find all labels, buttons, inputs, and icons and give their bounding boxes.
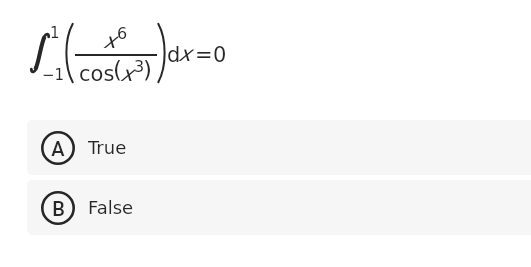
staticText: cos <box>79 62 115 86</box>
staticText: = <box>195 43 213 67</box>
staticText: d <box>167 43 181 67</box>
button[interactable]: A <box>27 120 531 175</box>
staticText: 6 <box>117 24 128 43</box>
staticText: True <box>88 137 127 158</box>
staticText: x <box>179 42 192 66</box>
staticText: B <box>52 197 65 220</box>
button[interactable]: B <box>27 180 531 235</box>
staticText: x <box>121 62 134 86</box>
staticText: 0 <box>213 43 227 67</box>
staticText: 3 <box>134 57 145 76</box>
staticText: x <box>104 29 117 53</box>
staticText: −1 <box>42 66 65 83</box>
staticText: ) <box>143 57 152 84</box>
staticText: ( <box>113 57 122 84</box>
staticText: 1 <box>50 24 60 41</box>
staticText: A <box>51 137 65 160</box>
staticText: False <box>88 197 134 218</box>
